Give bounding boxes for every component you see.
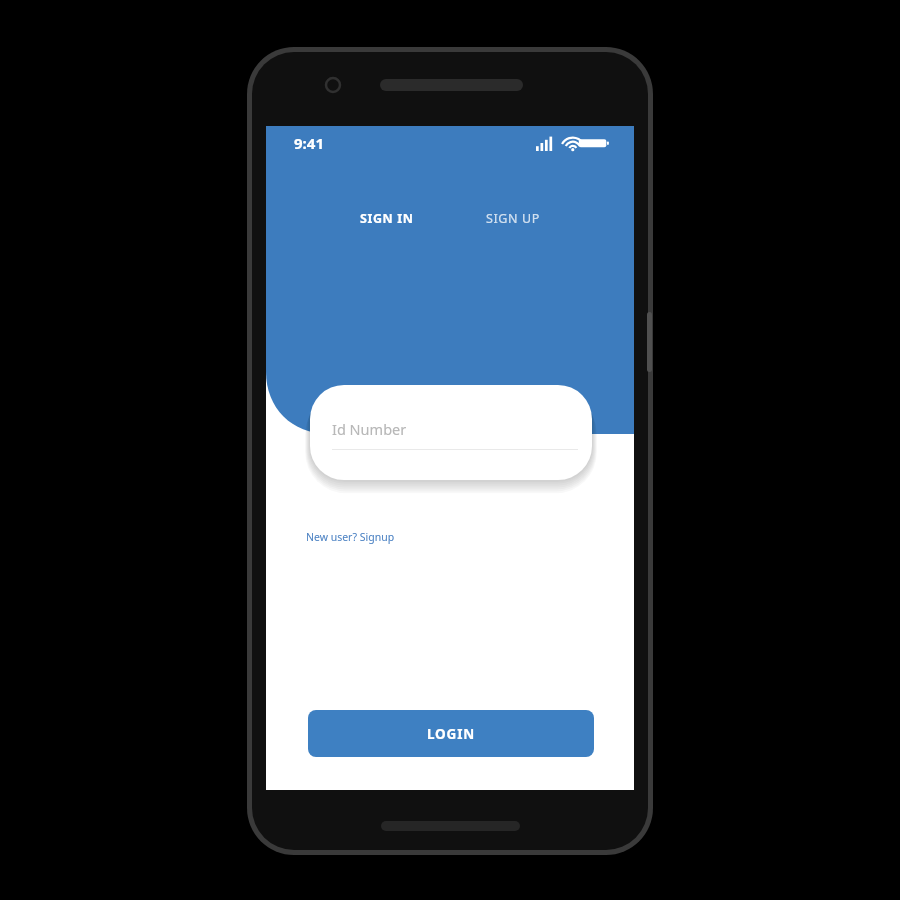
staticText: SIGN IN xyxy=(360,210,414,227)
staticText: LOGIN xyxy=(427,725,475,743)
staticText: 9:41 xyxy=(294,133,324,153)
button[interactable]: SIGN IN xyxy=(350,204,424,233)
button[interactable]: LOGIN xyxy=(308,710,594,757)
staticText: Id Number xyxy=(332,419,407,439)
staticText: New user? Signup xyxy=(306,530,395,544)
button[interactable]: SIGN UP xyxy=(476,204,550,233)
other: Signal, Wi-Fi and battery status xyxy=(536,135,610,151)
button[interactable]: New user? Signup xyxy=(302,526,399,548)
button[interactable]: Id Number xyxy=(310,385,592,480)
staticText: SIGN UP xyxy=(486,210,540,227)
